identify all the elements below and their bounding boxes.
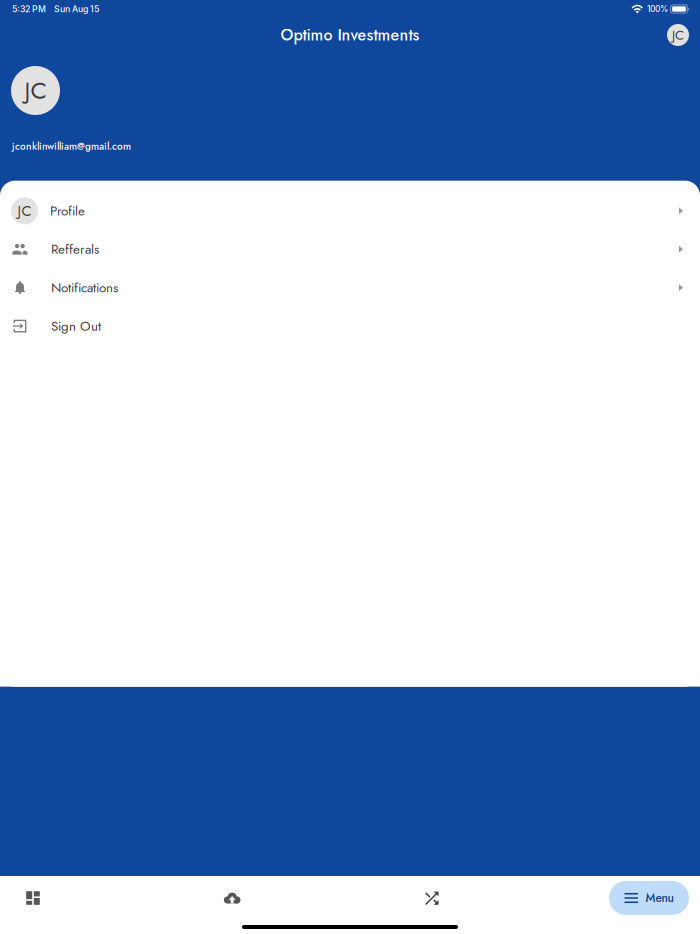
staticText: JC bbox=[672, 25, 684, 45]
button[interactable]: Account bbox=[663, 20, 693, 50]
button[interactable]: Menu bbox=[609, 881, 689, 915]
button[interactable]: Sign Out bbox=[0, 307, 700, 345]
staticText: Profile bbox=[50, 201, 85, 220]
staticText: jconklinwilliam@gmail.com bbox=[12, 139, 131, 154]
staticText: Menu bbox=[645, 889, 673, 906]
staticText: Sign Out bbox=[51, 316, 101, 336]
staticText: 5:32 PM bbox=[12, 4, 46, 14]
button[interactable]: Transfers bbox=[406, 876, 470, 920]
button[interactable]: Dashboard bbox=[1, 876, 65, 920]
staticText: Notifications bbox=[51, 278, 118, 297]
button[interactable]: Upload bbox=[204, 876, 268, 920]
button[interactable]: JC bbox=[0, 192, 700, 230]
button[interactable]: Refferals bbox=[0, 230, 700, 268]
staticText: Optimo Investments bbox=[280, 23, 419, 46]
button[interactable]: Notifications bbox=[0, 268, 700, 307]
staticText: Refferals bbox=[51, 240, 99, 259]
staticText: JC bbox=[24, 73, 46, 108]
staticText: Sun Aug 15 bbox=[54, 4, 99, 14]
staticText: 100% bbox=[647, 4, 668, 14]
staticText: JC bbox=[17, 200, 31, 221]
